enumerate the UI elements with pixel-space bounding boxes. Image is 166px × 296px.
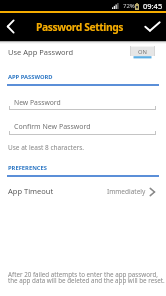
staticText: 72% <box>123 2 135 10</box>
staticText: Immediately <box>107 187 146 196</box>
button[interactable]: Save <box>141 15 163 37</box>
button[interactable]: Back <box>0 16 20 36</box>
staticText: ON <box>138 48 147 56</box>
staticText: App Timeout <box>8 186 54 196</box>
staticText: 09:45 <box>143 1 163 11</box>
staticText: Use App Password <box>8 47 74 57</box>
staticText: Password Settings <box>36 20 124 34</box>
staticText: APP PASSWORD <box>8 73 53 81</box>
staticText: PREFERENCES <box>8 164 48 172</box>
staticText: Confirm New Password <box>14 122 91 132</box>
staticText: New Password <box>14 98 61 107</box>
button[interactable]: Use App Password toggle, On <box>130 46 155 59</box>
button[interactable]: App Timeout <box>0 180 166 202</box>
staticText: After 20 failed attempts to enter the ap… <box>8 270 166 285</box>
staticText: Use at least 8 characters. <box>8 143 85 152</box>
button[interactable]: Use App Password <box>0 41 166 63</box>
